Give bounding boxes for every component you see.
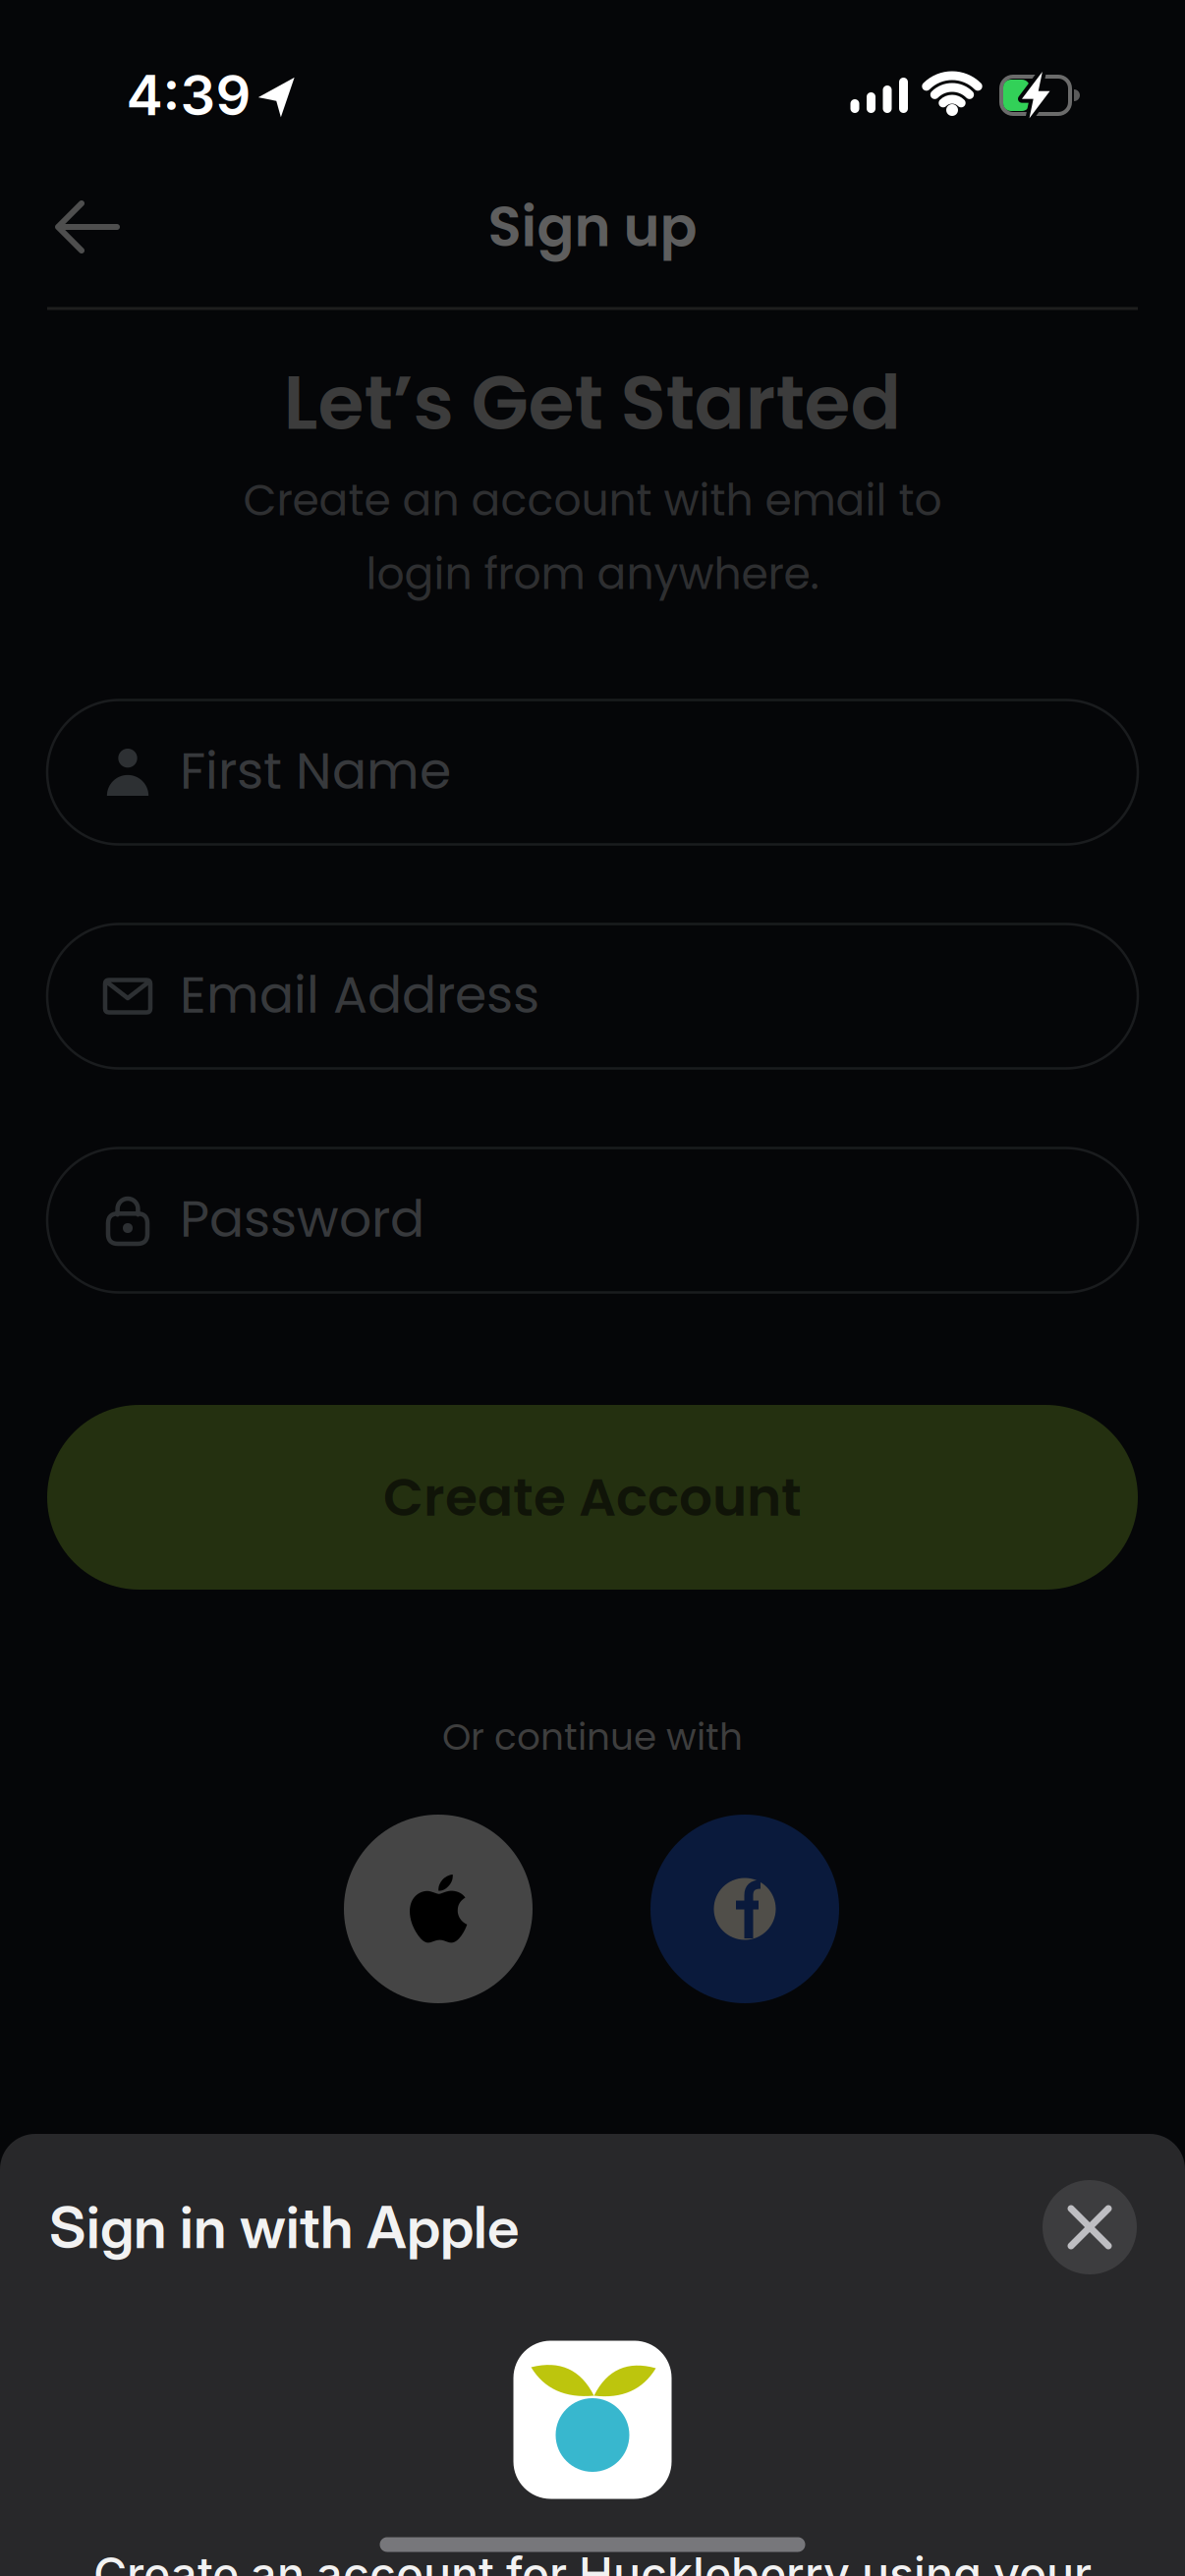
staticText: Create an account for Huckleberry using … [93, 2546, 1092, 2576]
button[interactable]: Close [1043, 2180, 1137, 2274]
staticText: First Name [180, 735, 451, 806]
button[interactable]: Email Address [47, 924, 1138, 1068]
staticText: Let’s Get Started [283, 351, 902, 455]
staticText: Email Address [180, 959, 539, 1030]
staticText: Password [180, 1183, 424, 1254]
staticText: Create Account [383, 1461, 802, 1534]
staticText: login from anywhere. [366, 543, 819, 604]
staticText: Or continue with [442, 1711, 743, 1763]
staticText: 4:39 [126, 62, 251, 129]
button[interactable]: Continue with Facebook [650, 1815, 839, 2003]
button[interactable]: Continue with Apple [344, 1815, 533, 2003]
button[interactable]: Back [56, 201, 117, 252]
button[interactable]: First Name [47, 700, 1138, 844]
button[interactable]: Create Account [47, 1405, 1138, 1590]
button[interactable]: Password [47, 1148, 1138, 1292]
staticText: Sign in with Apple [49, 2192, 519, 2262]
staticText: Create an account with email to [243, 470, 942, 530]
staticText: Sign up [488, 188, 697, 265]
